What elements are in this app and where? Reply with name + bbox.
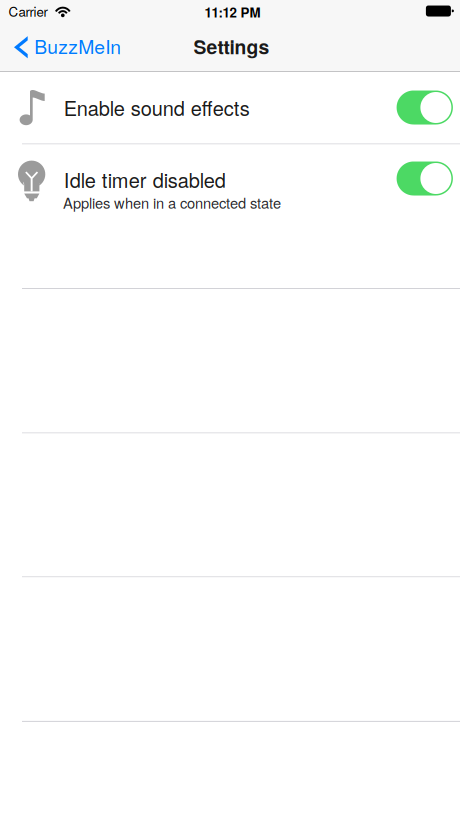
staticText: BuzzMeIn: [34, 32, 121, 60]
button[interactable]: Toggle: [397, 90, 453, 124]
button[interactable]: BuzzMeIn: [0, 22, 134, 71]
staticText: Carrier: [8, 1, 47, 21]
button[interactable]: Toggle: [397, 161, 453, 195]
staticText: Enable sound effects: [64, 93, 250, 122]
staticText: 11:12 PM: [204, 2, 260, 22]
staticText: Idle timer disabled: [64, 165, 226, 194]
button[interactable]: Idle timer disabled: [0, 144, 460, 288]
staticText: Settings: [193, 32, 269, 60]
button[interactable]: Enable sound effects: [0, 71, 460, 143]
staticText: Applies when in a connected state: [63, 192, 281, 213]
